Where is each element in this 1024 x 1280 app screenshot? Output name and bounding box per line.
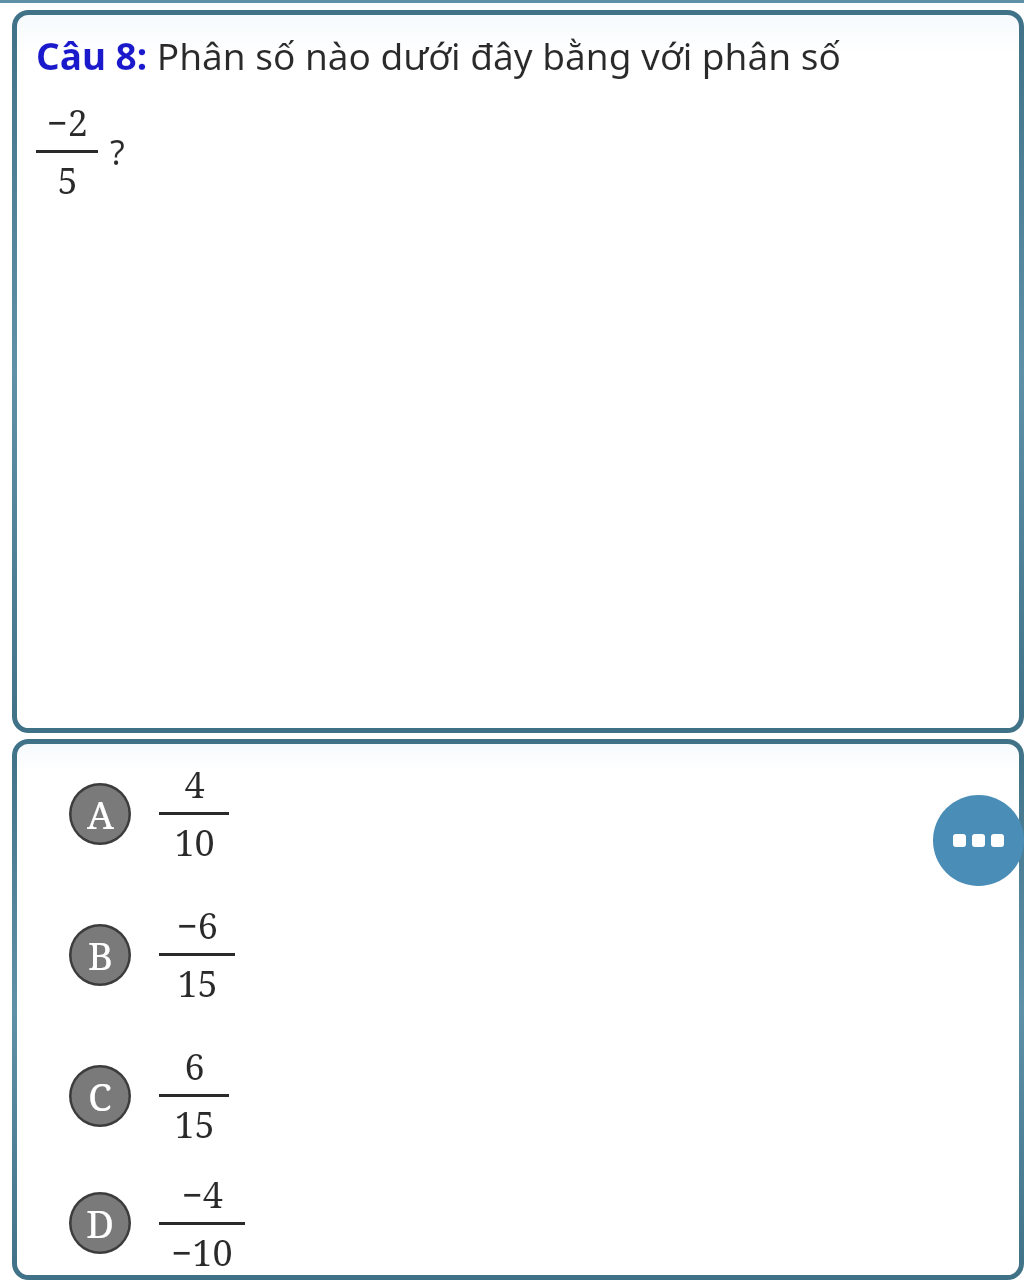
staticText: 4 bbox=[184, 760, 205, 809]
button[interactable]: Câu 8: Phân số nào dưới đây bằng với phâ… bbox=[12, 10, 1024, 733]
staticText: D bbox=[86, 1197, 114, 1249]
staticText: ? bbox=[110, 129, 125, 175]
staticText: 5 bbox=[57, 156, 78, 205]
staticText: C bbox=[88, 1070, 112, 1122]
staticText: 6 bbox=[184, 1042, 205, 1091]
staticText: −4 bbox=[182, 1170, 223, 1219]
staticText: 15 bbox=[174, 1100, 215, 1149]
staticText: A bbox=[87, 788, 114, 840]
staticText: −6 bbox=[177, 901, 218, 950]
button[interactable]: A bbox=[12, 743, 1024, 884]
staticText: B bbox=[88, 929, 113, 981]
button[interactable]: More options bbox=[933, 795, 1024, 886]
button[interactable]: B bbox=[12, 884, 1024, 1025]
button[interactable]: D bbox=[12, 1166, 1024, 1280]
staticText: −10 bbox=[171, 1228, 233, 1277]
staticText: Câu 8: Phân số nào dưới đây bằng với phâ… bbox=[36, 30, 841, 80]
staticText: 10 bbox=[174, 818, 215, 867]
staticText: −2 bbox=[47, 98, 88, 147]
button[interactable]: C bbox=[12, 1025, 1024, 1166]
staticText: 15 bbox=[177, 959, 218, 1008]
